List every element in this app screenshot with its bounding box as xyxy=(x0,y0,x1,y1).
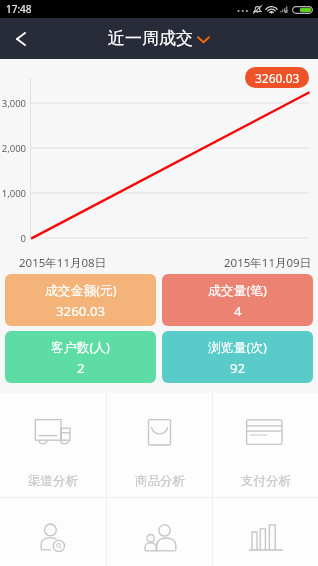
button[interactable]: 会员分析 xyxy=(107,498,212,566)
staticText: 成交量(笔) xyxy=(208,281,267,298)
button[interactable]: 客户分析 xyxy=(0,498,106,566)
staticText: 0 xyxy=(20,232,26,245)
staticText: 17:48 xyxy=(6,2,32,16)
button[interactable]: 3260.03 xyxy=(245,67,309,88)
staticText: 3260.03 xyxy=(255,70,300,86)
button[interactable]: 成交金额(元) xyxy=(5,274,156,326)
staticText: 3260.03 xyxy=(56,302,106,320)
staticText: 支付分析 xyxy=(241,473,291,489)
staticText: 2 xyxy=(77,359,85,377)
staticText: 商品分析 xyxy=(135,473,185,489)
staticText: 3,000 xyxy=(1,97,26,110)
staticText: 2015年11月09日 xyxy=(224,255,312,271)
button[interactable]: 渠道分析 xyxy=(0,393,106,497)
staticText: 成交金额(元) xyxy=(45,281,117,298)
staticText: 92 xyxy=(230,359,246,377)
staticText: 近一周成交 xyxy=(108,28,193,49)
staticText: 客户数(人) xyxy=(51,338,110,355)
staticText: 4 xyxy=(234,302,242,320)
button[interactable]: 业绩分析 xyxy=(213,498,318,566)
staticText: 2015年11月08日 xyxy=(19,255,107,271)
button[interactable]: 近一周成交 xyxy=(102,24,216,53)
button[interactable]: 浏览量(次) xyxy=(162,331,313,383)
button[interactable]: Back xyxy=(0,18,44,59)
staticText: 1,000 xyxy=(1,187,26,200)
staticText: 渠道分析 xyxy=(28,473,78,489)
staticText: 2,000 xyxy=(1,142,26,155)
button[interactable]: 客户数(人) xyxy=(5,331,156,383)
button[interactable]: 商品分析 xyxy=(107,393,212,497)
button[interactable]: 成交量(笔) xyxy=(162,274,313,326)
staticText: 浏览量(次) xyxy=(208,338,267,355)
button[interactable]: 支付分析 xyxy=(213,393,318,497)
